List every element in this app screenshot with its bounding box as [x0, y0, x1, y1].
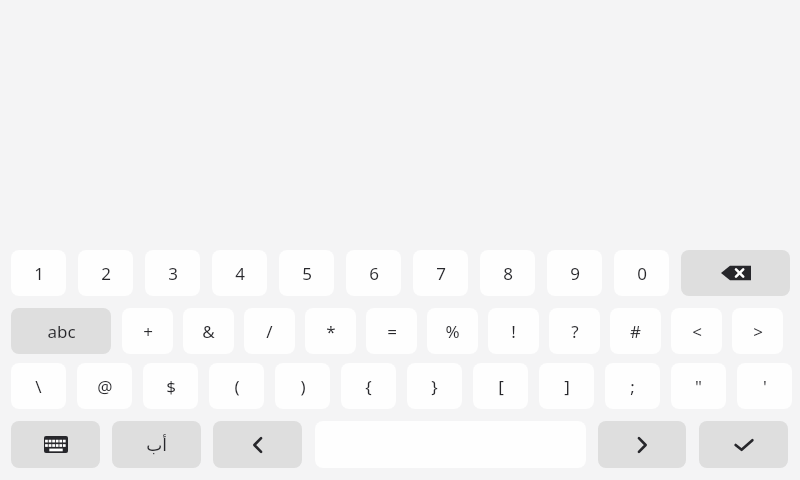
button[interactable]: abc — [11, 308, 111, 354]
button[interactable]: Backspace — [681, 250, 790, 296]
staticText: 7 — [436, 262, 446, 285]
staticText: 8 — [503, 262, 513, 285]
staticText: ] — [564, 375, 570, 398]
staticText: { — [365, 375, 372, 398]
button[interactable]: & — [183, 308, 234, 354]
button[interactable]: 2 — [78, 250, 133, 296]
button[interactable]: 7 — [413, 250, 468, 296]
button[interactable]: * — [305, 308, 356, 354]
staticText: " — [695, 375, 702, 398]
button[interactable]: 9 — [547, 250, 602, 296]
button[interactable]: > — [732, 308, 783, 354]
staticText: * — [326, 320, 336, 343]
button[interactable]: \ — [11, 363, 66, 409]
staticText: أب — [146, 435, 167, 455]
staticText: 3 — [168, 262, 178, 285]
button[interactable]: " — [671, 363, 726, 409]
button[interactable]: Next — [598, 421, 686, 468]
staticText: ( — [234, 375, 240, 398]
button[interactable]: ( — [209, 363, 264, 409]
staticText: ; — [630, 375, 635, 398]
button[interactable]: ! — [488, 308, 539, 354]
staticText: & — [202, 320, 215, 343]
staticText: @ — [97, 375, 113, 398]
button[interactable]: 5 — [279, 250, 334, 296]
button[interactable]: % — [427, 308, 478, 354]
button[interactable]: 0 — [614, 250, 669, 296]
button[interactable]: 3 — [145, 250, 200, 296]
staticText: 9 — [570, 262, 580, 285]
staticText: 1 — [34, 262, 44, 285]
staticText: # — [630, 320, 641, 343]
button[interactable]: { — [341, 363, 396, 409]
staticText: = — [387, 320, 397, 343]
button[interactable]: $ — [143, 363, 198, 409]
button[interactable]: ? — [549, 308, 600, 354]
staticText: ) — [300, 375, 306, 398]
staticText: 0 — [637, 262, 647, 285]
button[interactable]: + — [122, 308, 173, 354]
staticText: 4 — [235, 262, 245, 285]
staticText: } — [431, 375, 438, 398]
staticText: % — [445, 320, 460, 343]
staticText: < — [692, 320, 702, 343]
button[interactable]: [ — [473, 363, 528, 409]
button[interactable]: / — [244, 308, 295, 354]
staticText: $ — [166, 375, 176, 398]
button[interactable]: = — [366, 308, 417, 354]
button[interactable]: < — [671, 308, 722, 354]
staticText: + — [143, 320, 153, 343]
button[interactable]: @ — [77, 363, 132, 409]
staticText: ? — [571, 320, 579, 343]
button[interactable]: Done — [699, 421, 788, 468]
button[interactable]: ; — [605, 363, 660, 409]
staticText: 2 — [101, 262, 111, 285]
button[interactable]: ) — [275, 363, 330, 409]
button[interactable]: Previous — [213, 421, 302, 468]
staticText: [ — [498, 375, 504, 398]
button[interactable]: } — [407, 363, 462, 409]
button[interactable]: 8 — [480, 250, 535, 296]
staticText: / — [266, 320, 273, 343]
button[interactable]: ] — [539, 363, 594, 409]
button[interactable]: Switch keyboard — [11, 421, 100, 468]
staticText: ' — [763, 375, 767, 398]
staticText: 6 — [369, 262, 379, 285]
button[interactable]: أب — [112, 421, 201, 468]
staticText: \ — [35, 375, 42, 398]
staticText: > — [753, 320, 763, 343]
staticText: abc — [47, 320, 76, 343]
button[interactable]: # — [610, 308, 661, 354]
staticText: ! — [511, 320, 516, 343]
button[interactable]: 1 — [11, 250, 66, 296]
staticText: 5 — [302, 262, 312, 285]
button[interactable]: 6 — [346, 250, 401, 296]
button[interactable]: 4 — [212, 250, 267, 296]
button[interactable]: ' — [737, 363, 792, 409]
